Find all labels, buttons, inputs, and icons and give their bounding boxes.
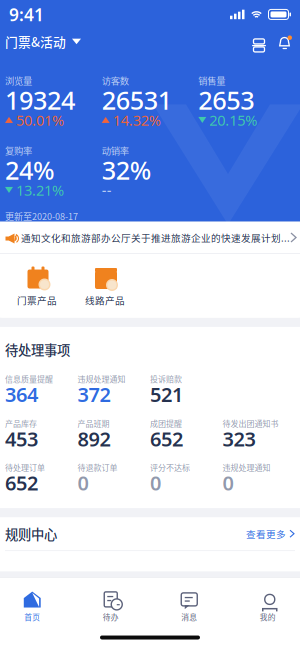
- staticText: 更新至2020-08-17: [5, 209, 78, 222]
- staticText: 13.21%: [16, 180, 64, 200]
- button[interactable]: 产品班期: [77, 417, 150, 448]
- staticText: 19324: [5, 83, 75, 117]
- staticText: 24%: [5, 153, 55, 187]
- staticText: 访客数: [102, 74, 129, 87]
- staticText: 产品库存: [5, 417, 37, 429]
- button[interactable]: 待处理订单: [5, 461, 77, 492]
- button[interactable]: 待办: [71, 590, 150, 623]
- button[interactable]: Notifications: [268, 34, 292, 48]
- button[interactable]: 违规处理通知: [77, 373, 150, 404]
- staticText: 2653: [198, 83, 254, 117]
- staticText: 待处理事项: [5, 340, 70, 359]
- staticText: 0: [222, 469, 233, 496]
- staticText: 32%: [102, 153, 152, 187]
- staticText: 364: [5, 381, 38, 407]
- staticText: 销售量: [198, 74, 225, 87]
- button[interactable]: 信息质量提醒: [5, 373, 77, 404]
- staticText: 892: [77, 425, 110, 452]
- staticText: 违规处理通知: [222, 461, 270, 473]
- staticText: 14.32%: [113, 110, 161, 130]
- staticText: 浏览量: [5, 74, 32, 87]
- button[interactable]: 产品库存: [5, 417, 77, 448]
- staticText: 20.15%: [209, 110, 257, 130]
- button[interactable]: 投诉赔款: [150, 373, 222, 404]
- button[interactable]: 线路产品: [71, 264, 139, 307]
- staticText: 信息质量提醒: [5, 373, 53, 384]
- staticText: 复购率: [5, 144, 32, 157]
- button[interactable]: 违规处理通知: [222, 461, 295, 492]
- staticText: 门票&活动: [5, 32, 66, 51]
- button[interactable]: 评分不达标: [150, 461, 222, 492]
- staticText: 待发出团通知书: [222, 417, 278, 429]
- staticText: 26531: [102, 83, 172, 117]
- button[interactable]: 待发出团通知书: [222, 417, 295, 448]
- staticText: 成团提醒: [150, 417, 182, 429]
- staticText: 违规处理通知: [77, 373, 125, 384]
- staticText: 待退款订单: [77, 461, 117, 473]
- staticText: 652: [150, 425, 183, 452]
- staticText: 消息: [181, 611, 197, 623]
- staticText: 我的: [260, 611, 276, 623]
- staticText: 521: [150, 381, 183, 407]
- staticText: 评分不达标: [150, 461, 190, 473]
- staticText: 规则中心: [5, 524, 57, 543]
- staticText: 线路产品: [85, 293, 125, 307]
- button[interactable]: 门票产品: [3, 264, 71, 307]
- button[interactable]: 我的: [228, 590, 300, 623]
- button[interactable]: 成团提醒: [150, 417, 222, 448]
- staticText: --: [102, 180, 112, 200]
- staticText: 652: [5, 469, 38, 496]
- staticText: 9:41: [9, 3, 44, 26]
- button[interactable]: Switch view: [250, 35, 268, 48]
- button[interactable]: 首页: [0, 590, 71, 623]
- staticText: 通知文化和旅游部办公厅关于推进旅游企业的快速发展计划...: [21, 230, 290, 244]
- staticText: 0: [150, 469, 161, 496]
- staticText: 投诉赔款: [150, 373, 182, 384]
- staticText: 首页: [24, 611, 40, 623]
- staticText: 动销率: [102, 144, 129, 157]
- button[interactable]: 通知文化和旅游部办公厅关于推进旅游企业的快速发展计划...: [0, 222, 300, 253]
- staticText: 50.01%: [16, 110, 64, 130]
- staticText: 待办: [103, 611, 119, 623]
- staticText: 372: [77, 381, 110, 407]
- button[interactable]: 门票&活动: [5, 32, 81, 51]
- button[interactable]: 查看更多: [246, 527, 295, 541]
- staticText: 0: [77, 469, 88, 496]
- staticText: 453: [5, 425, 38, 452]
- staticText: 待处理订单: [5, 461, 45, 473]
- button[interactable]: 消息: [150, 590, 228, 623]
- staticText: 门票产品: [17, 293, 57, 307]
- staticText: 产品班期: [77, 417, 109, 429]
- staticText: 323: [222, 425, 255, 452]
- staticText: 查看更多: [246, 527, 286, 541]
- button[interactable]: 待退款订单: [77, 461, 150, 492]
